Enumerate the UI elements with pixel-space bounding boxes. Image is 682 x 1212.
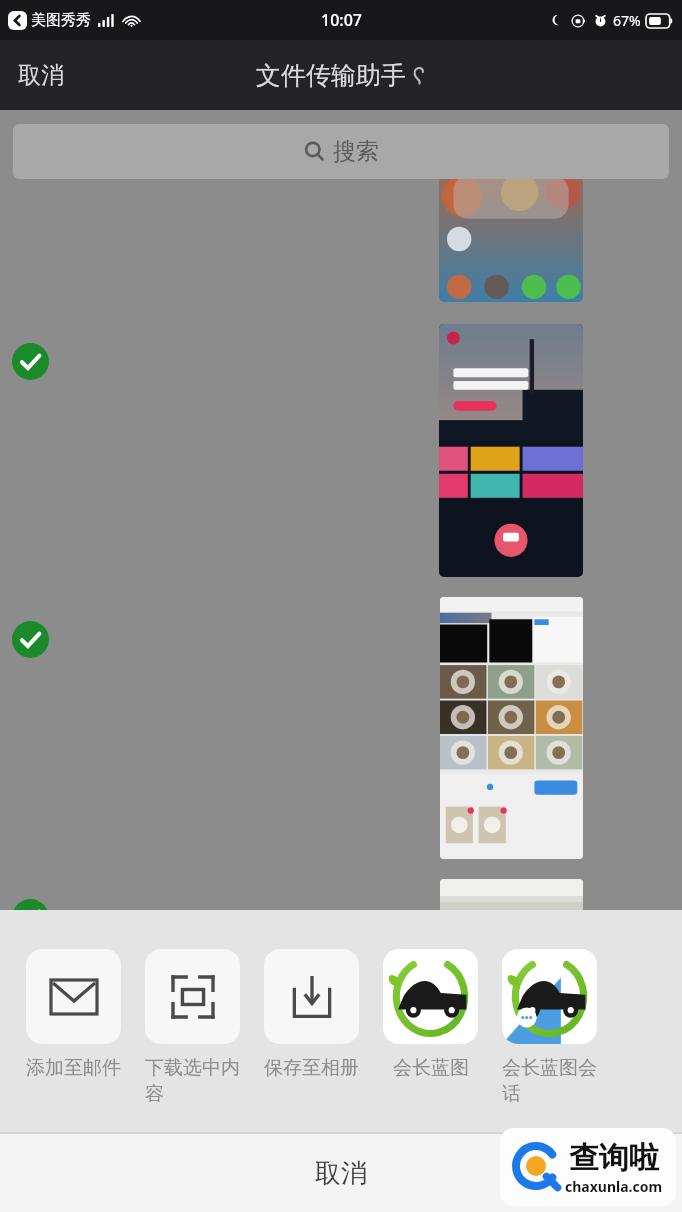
staticText: 取消 <box>315 1157 367 1190</box>
staticText: 会长蓝图 <box>393 1056 469 1080</box>
staticText: 下载选中内容 <box>145 1056 240 1106</box>
button[interactable]: Selected <box>12 343 49 380</box>
button[interactable] <box>440 879 583 939</box>
staticText: 会长蓝图会话 <box>502 1056 597 1106</box>
button[interactable]: Selected <box>12 621 49 658</box>
staticText: 保存至相册 <box>264 1056 359 1080</box>
staticText: 文件传输助手 <box>256 60 406 91</box>
button[interactable]: 会长蓝图会话 <box>502 949 597 1106</box>
button[interactable] <box>439 176 583 302</box>
button[interactable]: Selected <box>12 899 49 936</box>
staticText: 添加至邮件 <box>26 1056 121 1080</box>
button[interactable]: 搜索 <box>13 124 669 179</box>
staticText: 美图秀秀 <box>31 11 91 30</box>
button[interactable] <box>439 324 583 577</box>
staticText: 10:07 <box>321 9 362 31</box>
staticText: 取消 <box>18 61 64 90</box>
button[interactable]: 保存至相册 <box>264 949 359 1080</box>
button[interactable]: 会长蓝图 <box>383 949 478 1080</box>
button[interactable]: 取消 <box>0 47 82 104</box>
button[interactable]: 取消 <box>0 1134 682 1212</box>
button[interactable] <box>440 597 583 859</box>
button[interactable]: 添加至邮件 <box>26 949 121 1080</box>
staticText: chaxunla.com <box>565 1177 663 1196</box>
button[interactable]: 下载选中内容 <box>145 949 240 1106</box>
staticText: 搜索 <box>333 137 379 166</box>
staticText: 67% <box>613 11 641 30</box>
staticText: 查询啦 <box>569 1139 659 1177</box>
